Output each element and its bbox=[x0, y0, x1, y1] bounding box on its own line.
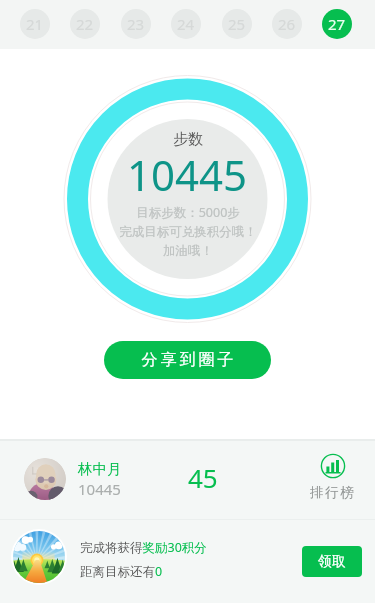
staticText: 林中月 bbox=[78, 460, 122, 478]
button[interactable]: 排行榜 bbox=[305, 450, 360, 504]
button[interactable]: 26 bbox=[272, 9, 302, 39]
staticText: 10445 bbox=[127, 146, 248, 203]
staticText: 目标步数：5000步 完成目标可兑换积分哦！ 加油哦！ bbox=[119, 204, 257, 259]
staticText: 分享到圈子 bbox=[140, 350, 235, 370]
staticText: 10445 bbox=[78, 479, 121, 499]
button[interactable]: 领取 bbox=[302, 546, 362, 577]
staticText: 27 bbox=[328, 14, 346, 34]
button[interactable]: 24 bbox=[171, 9, 201, 39]
staticText: 完成将获得奖励30积分 bbox=[80, 539, 207, 556]
button[interactable]: 23 bbox=[121, 9, 151, 39]
staticText: 25 bbox=[228, 14, 246, 34]
button[interactable]: 27 bbox=[322, 9, 352, 39]
staticText: 22 bbox=[76, 14, 94, 34]
staticText: 步数 bbox=[173, 130, 203, 149]
staticText: 45 bbox=[188, 460, 218, 495]
staticText: 23 bbox=[127, 14, 145, 34]
button[interactable]: 25 bbox=[222, 9, 252, 39]
button[interactable]: 21 bbox=[20, 9, 50, 39]
staticText: 距离目标还有0 bbox=[80, 563, 163, 580]
staticText: 排行榜 bbox=[310, 484, 356, 501]
button[interactable]: 22 bbox=[70, 9, 100, 39]
staticText: 26 bbox=[278, 14, 296, 34]
staticText: 24 bbox=[177, 14, 195, 34]
staticText: 21 bbox=[26, 14, 44, 34]
button[interactable]: 林中月 bbox=[0, 441, 375, 519]
button[interactable]: 分享到圈子 bbox=[104, 341, 271, 379]
staticText: 领取 bbox=[318, 553, 346, 571]
